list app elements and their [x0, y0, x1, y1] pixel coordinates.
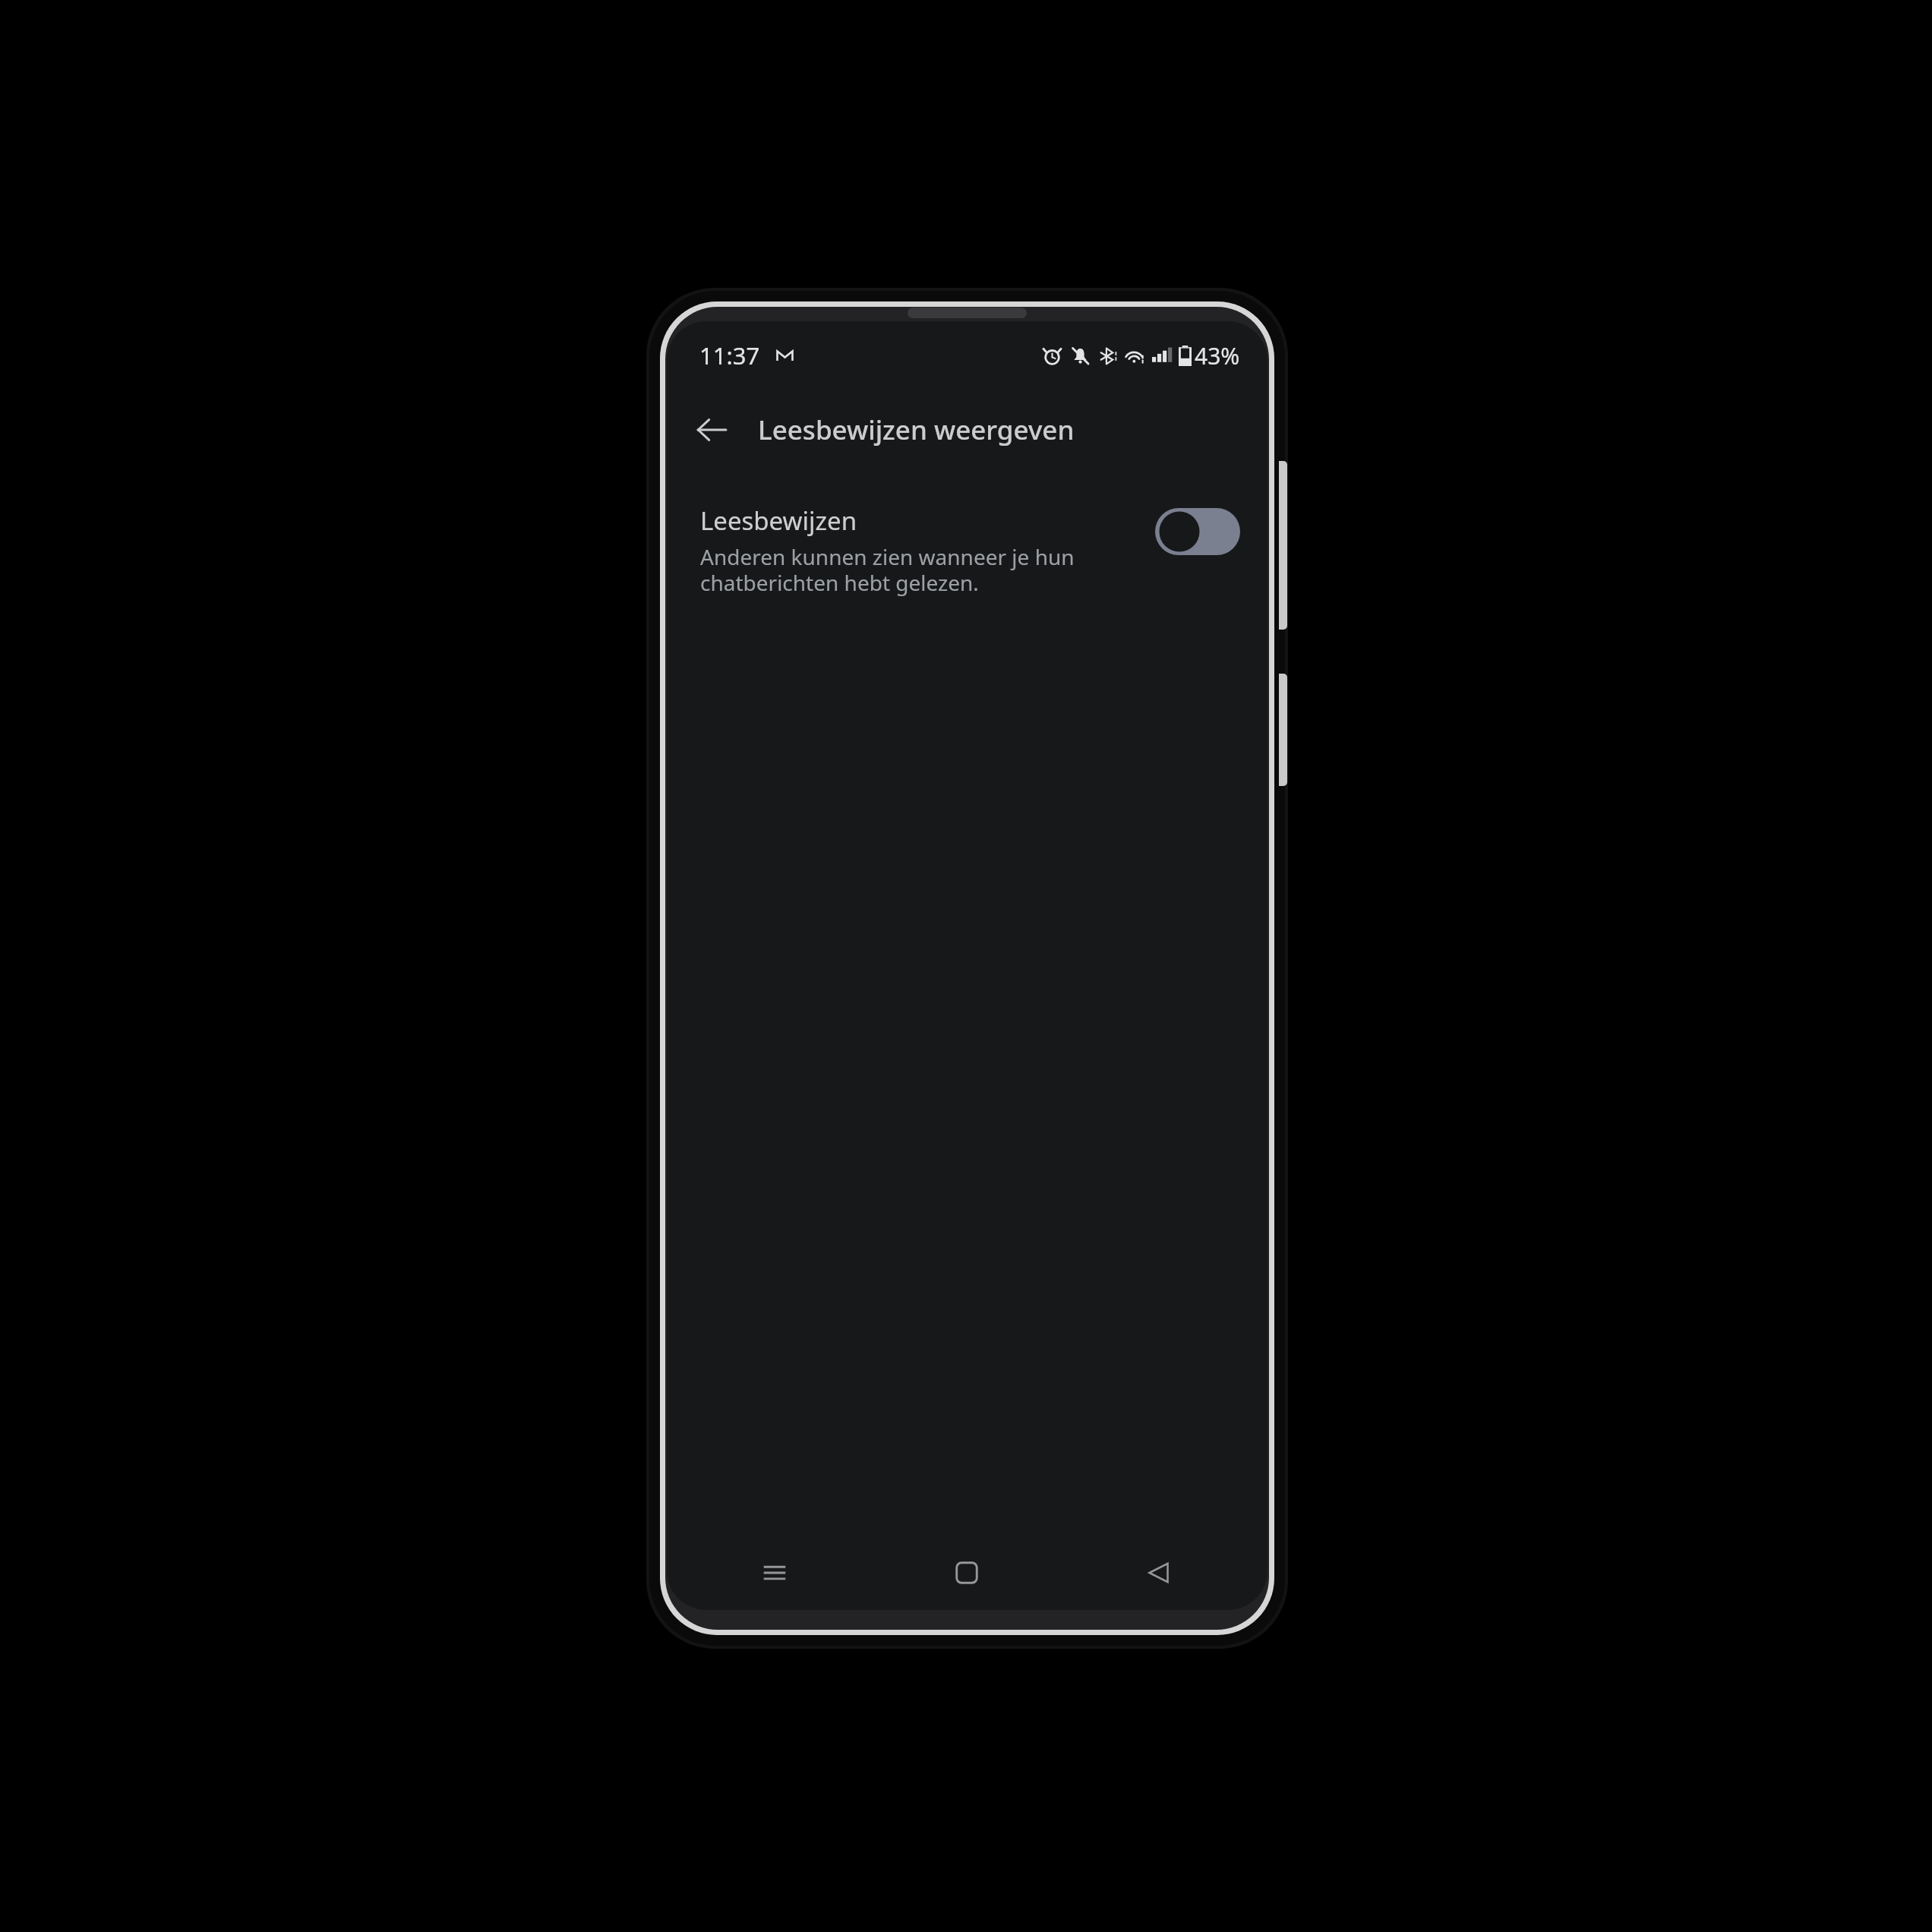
button[interactable]: Leesbewijzen aan/uit: [1155, 508, 1240, 555]
staticText: Anderen kunnen zien wanneer je hun chatb…: [700, 542, 1075, 597]
staticText: 43%: [1195, 340, 1240, 371]
button[interactable]: Home: [934, 1540, 999, 1605]
staticText: Leesbewijzen: [700, 504, 857, 538]
button[interactable]: Terug: [685, 403, 738, 456]
button[interactable]: Recente apps: [742, 1540, 807, 1605]
button[interactable]: Leesbewijzen: [667, 500, 1267, 606]
staticText: 11:37: [699, 339, 760, 371]
button[interactable]: Terug: [1126, 1540, 1192, 1605]
staticText: Leesbewijzen weergeven: [758, 412, 1075, 448]
